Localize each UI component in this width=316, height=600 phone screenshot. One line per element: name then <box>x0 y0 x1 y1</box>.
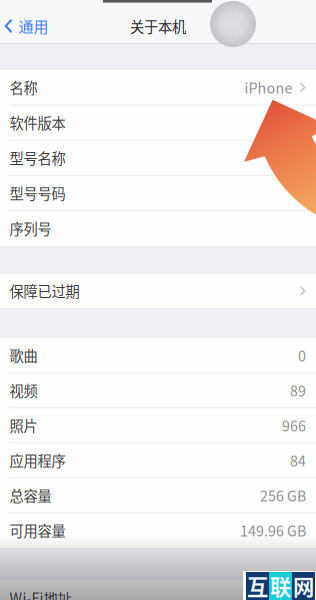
staticText: 视频 <box>9 380 37 401</box>
staticText: Wi-Fi地址 <box>9 587 71 600</box>
button[interactable]: 型号名称 <box>0 140 316 175</box>
button[interactable]: Wi-Fi地址 <box>0 580 316 600</box>
staticText: 通用 <box>18 15 48 37</box>
staticText: 关于本机 <box>130 16 186 36</box>
staticText: 型号名称 <box>9 147 65 168</box>
button[interactable]: 歌曲 <box>0 338 316 373</box>
button[interactable]: 应用程序 <box>0 443 316 478</box>
staticText: 照片 <box>9 415 37 436</box>
button[interactable]: 型号号码 <box>0 175 316 211</box>
button[interactable]: 照片 <box>0 408 316 443</box>
staticText: 名称 <box>9 77 37 98</box>
staticText: 互 <box>247 571 268 600</box>
staticText: 84 <box>290 450 306 471</box>
staticText: 序列号 <box>9 218 51 239</box>
button[interactable]: 通用 <box>0 11 80 41</box>
button[interactable]: 总容量 <box>0 478 316 513</box>
staticText: 966 <box>282 415 306 436</box>
staticText: 网 <box>293 571 314 600</box>
button[interactable]: 软件版本 <box>0 105 316 140</box>
button[interactable]: 可用容量 <box>0 513 316 548</box>
button[interactable]: 保障已过期 <box>0 274 316 308</box>
staticText: 保障已过期 <box>9 280 79 301</box>
staticText: 256 GB <box>260 485 306 506</box>
button[interactable]: 名称 <box>0 70 316 105</box>
staticText: 89 <box>290 380 306 401</box>
staticText: 软件版本 <box>9 112 65 133</box>
staticText: 应用程序 <box>9 450 65 471</box>
staticText: 149.96 GB <box>240 520 306 541</box>
button[interactable]: 序列号 <box>0 211 316 246</box>
staticText: 总容量 <box>9 485 51 506</box>
staticText: iPhone <box>244 77 292 98</box>
button[interactable]: 视频 <box>0 373 316 408</box>
staticText: 型号号码 <box>9 183 65 203</box>
staticText: 可用容量 <box>9 520 65 541</box>
staticText: 联 <box>270 571 291 600</box>
staticText: 歌曲 <box>9 345 37 366</box>
staticText: 0 <box>298 345 306 366</box>
